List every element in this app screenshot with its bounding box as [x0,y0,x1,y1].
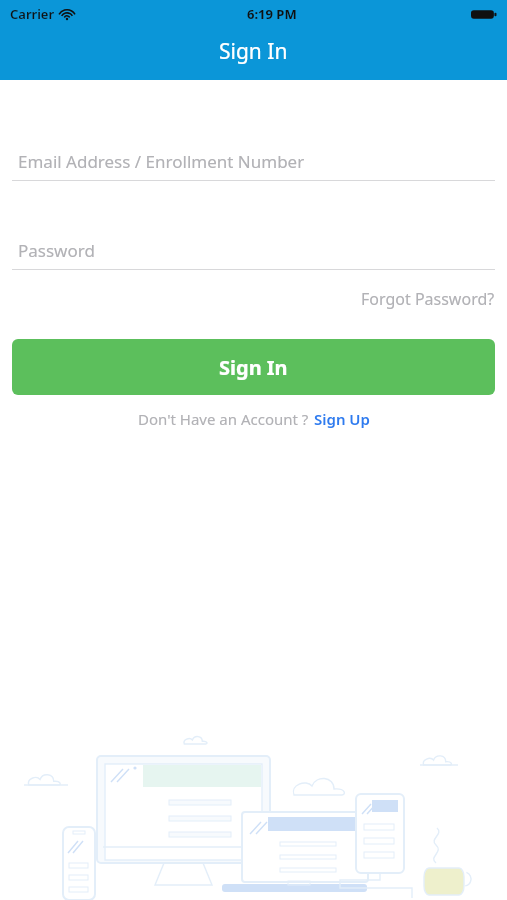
staticText: Carrier [10,5,55,23]
button[interactable]: Sign In [12,339,495,395]
button[interactable]: Email Address / Enrollment Number [0,142,507,181]
staticText: Don't Have an Account ? [138,409,309,429]
staticText: Password [18,239,95,262]
staticText: Sign Up [314,409,370,429]
staticText: 6:19 PM [247,5,297,23]
button[interactable]: Password [0,231,507,270]
button[interactable]: Sign Up [314,409,370,429]
staticText: Sign In [219,37,288,66]
staticText: Email Address / Enrollment Number [18,150,305,173]
button[interactable]: Forgot Password? [12,288,495,310]
staticText: Forgot Password? [361,288,495,310]
staticText: Sign In [219,354,288,381]
